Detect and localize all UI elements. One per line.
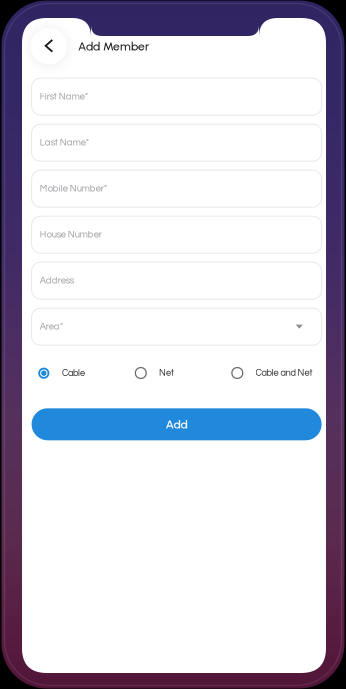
button[interactable]: Back — [26, 23, 72, 69]
button[interactable]: Cable and Net — [232, 362, 332, 384]
staticText: Address — [40, 276, 74, 285]
staticText: Cable — [62, 368, 85, 378]
staticText: Area* — [40, 322, 63, 331]
staticText: Add — [166, 417, 188, 431]
button[interactable]: First Name* — [32, 78, 322, 115]
button[interactable]: Last Name* — [32, 124, 322, 161]
button[interactable]: Area* — [32, 308, 322, 345]
staticText: Mobile Number* — [40, 184, 107, 193]
button[interactable]: House Number — [32, 216, 322, 253]
staticText: First Name* — [40, 92, 88, 101]
button[interactable]: Cable — [38, 362, 113, 384]
staticText: Last Name* — [40, 138, 89, 147]
staticText: Add Member — [78, 39, 149, 53]
button[interactable]: Add — [32, 408, 322, 440]
button[interactable]: Mobile Number* — [32, 170, 322, 207]
staticText: House Number — [40, 230, 102, 239]
staticText: Cable and Net — [256, 368, 313, 378]
staticText: Net — [159, 368, 174, 378]
button[interactable]: Net — [135, 362, 203, 384]
button[interactable]: Address — [32, 262, 322, 299]
